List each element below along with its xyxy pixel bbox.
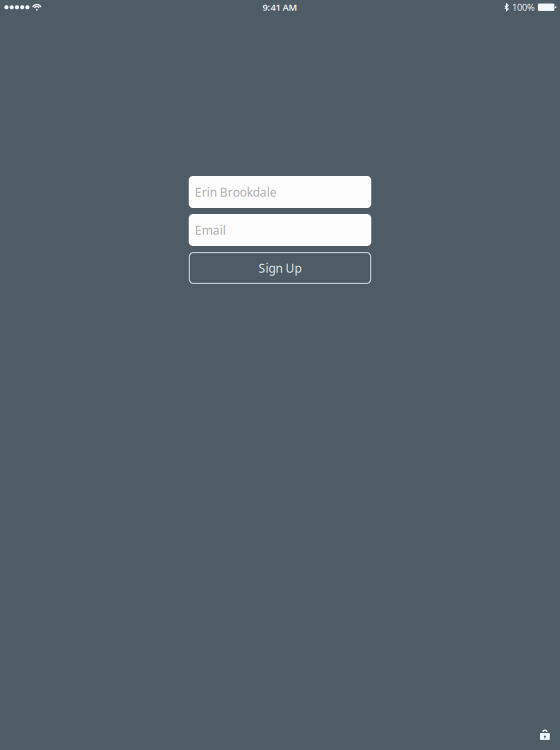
button[interactable]: Erin Brookdale <box>189 176 371 208</box>
staticText: Sign Up <box>258 260 301 276</box>
staticText: Email <box>195 222 226 238</box>
staticText: Erin Brookdale <box>195 184 277 200</box>
button[interactable]: Email <box>189 214 371 246</box>
staticText: 9:41 AM <box>262 1 297 13</box>
staticText: 100% <box>512 1 535 13</box>
button[interactable]: Sign Up <box>189 252 371 284</box>
